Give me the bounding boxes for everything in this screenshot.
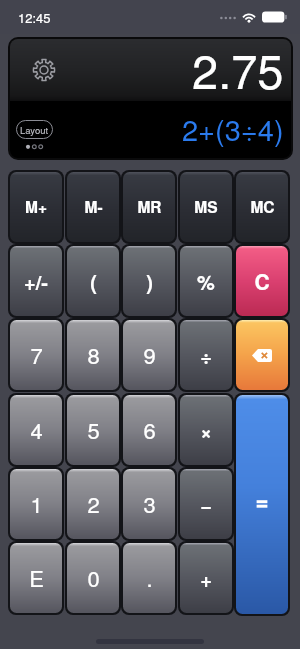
button[interactable]: + <box>180 543 232 613</box>
staticText: 2.75 <box>192 39 284 97</box>
staticText: 2+(3÷4) <box>182 108 284 150</box>
button[interactable]: ) <box>123 246 175 316</box>
button[interactable]: M+ <box>10 172 62 242</box>
staticText: ) <box>146 267 153 296</box>
button[interactable]: +/- <box>10 246 62 316</box>
staticText: 1 <box>30 488 43 520</box>
button[interactable]: MR <box>123 172 175 242</box>
button[interactable]: Page indicator <box>26 142 56 152</box>
button[interactable]: 4 <box>10 395 62 465</box>
button[interactable]: 2+(3÷4) <box>10 101 291 158</box>
staticText: C <box>254 266 270 296</box>
button[interactable]: Backspace <box>236 320 288 390</box>
staticText: MR <box>137 196 162 218</box>
staticText: M+ <box>25 196 47 218</box>
staticText: M- <box>84 196 103 218</box>
button[interactable]: 1 <box>10 469 62 539</box>
button[interactable]: 2 <box>67 469 119 539</box>
button[interactable]: 9 <box>123 320 175 390</box>
button[interactable]: M- <box>67 172 119 242</box>
button[interactable] <box>236 395 288 614</box>
staticText: 0 <box>87 562 100 594</box>
staticText: 8 <box>87 339 100 371</box>
staticText: − <box>200 490 212 519</box>
staticText: . <box>146 562 153 594</box>
staticText: +/- <box>24 267 48 296</box>
button[interactable]: 8 <box>67 320 119 390</box>
button[interactable]: MS <box>180 172 232 242</box>
staticText: 3 <box>143 488 156 520</box>
button[interactable]: . <box>123 543 175 613</box>
staticText: MC <box>250 196 275 218</box>
button[interactable]: ( <box>67 246 119 316</box>
staticText: + <box>200 564 212 593</box>
button[interactable]: Settings <box>10 39 291 101</box>
staticText: ÷ <box>200 341 212 370</box>
button[interactable]: 5 <box>67 395 119 465</box>
staticText: 12:45 <box>18 8 51 27</box>
staticText: 6 <box>143 414 156 446</box>
staticText: 4 <box>30 414 43 446</box>
staticText: 7 <box>30 339 43 371</box>
staticText: ( <box>90 267 97 296</box>
staticText: % <box>197 267 215 296</box>
button[interactable]: Settings <box>31 57 57 83</box>
staticText: E <box>29 562 44 594</box>
button[interactable]: − <box>180 469 232 539</box>
staticText: × <box>200 416 212 445</box>
button[interactable]: 0 <box>67 543 119 613</box>
button[interactable]: 7 <box>10 320 62 390</box>
button[interactable]: C <box>236 246 288 316</box>
staticText: 2 <box>87 488 100 520</box>
staticText: 9 <box>143 339 156 371</box>
button[interactable]: ÷ <box>180 320 232 390</box>
staticText: Layout <box>20 123 49 137</box>
button[interactable]: Layout <box>16 120 53 139</box>
button[interactable]: 6 <box>123 395 175 465</box>
button[interactable]: 3 <box>123 469 175 539</box>
staticText: 5 <box>87 414 100 446</box>
button[interactable]: × <box>180 395 232 465</box>
button[interactable]: % <box>180 246 232 316</box>
staticText: MS <box>194 196 218 218</box>
button[interactable]: E <box>10 543 62 613</box>
button[interactable]: MC <box>236 172 288 242</box>
